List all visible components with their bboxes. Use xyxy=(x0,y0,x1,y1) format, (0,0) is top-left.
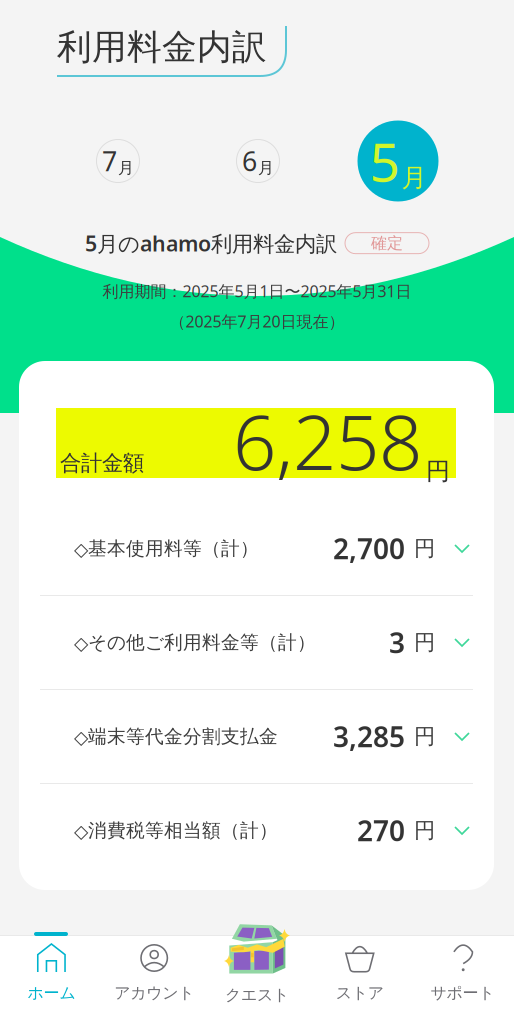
staticText: 2,700 xyxy=(333,530,405,567)
button[interactable]: ◇その他ご利用料金等（計） xyxy=(19,596,494,689)
staticText: 円 xyxy=(426,456,450,486)
staticText: 確定 xyxy=(371,233,403,253)
staticText: 月 xyxy=(258,158,274,178)
staticText: 利用料金内訳 xyxy=(57,26,267,69)
staticText: 270 xyxy=(357,812,405,849)
button[interactable]: 7 xyxy=(92,135,144,187)
button[interactable]: 6 xyxy=(232,135,284,187)
staticText: クエスト xyxy=(225,985,289,1005)
staticText: 合計金額 xyxy=(60,450,144,476)
staticText: ◇端末等代金分割支払金 xyxy=(74,725,278,748)
staticText: ホーム xyxy=(27,983,75,1003)
staticText: ◇その他ご利用料金等（計） xyxy=(74,631,316,654)
staticText: 月 xyxy=(118,158,134,178)
staticText: 3,285 xyxy=(333,718,405,755)
staticText: ◇消費税等相当額（計） xyxy=(74,819,278,842)
button[interactable]: ◇消費税等相当額（計） xyxy=(19,784,494,877)
staticText: 6 xyxy=(242,143,257,179)
staticText: サポート xyxy=(431,983,495,1003)
staticText: アカウント xyxy=(114,983,194,1003)
staticText: 7 xyxy=(102,143,117,179)
staticText: 5月のahamo利用料金内訳 xyxy=(85,229,337,257)
staticText: 月 xyxy=(401,162,426,193)
staticText: 利用期間：2025年5月1日〜2025年5月31日 xyxy=(102,280,411,301)
button[interactable]: ストア xyxy=(308,930,411,1024)
staticText: 円 xyxy=(414,817,435,844)
staticText: 円 xyxy=(414,535,435,562)
staticText: 3 xyxy=(389,624,405,661)
button[interactable]: ◇基本使用料等（計） xyxy=(19,502,494,595)
button[interactable]: ホーム xyxy=(0,930,103,1024)
staticText: ◇基本使用料等（計） xyxy=(74,537,259,560)
staticText: （2025年7月20日現在） xyxy=(169,311,344,332)
staticText: 円 xyxy=(414,629,435,656)
button[interactable]: ◇端末等代金分割支払金 xyxy=(19,690,494,783)
staticText: ストア xyxy=(336,983,384,1003)
staticText: 6,258 xyxy=(233,390,422,491)
button[interactable]: サポート xyxy=(411,930,514,1024)
button[interactable]: クエスト xyxy=(206,936,308,1024)
staticText: 円 xyxy=(414,723,435,750)
button[interactable]: 5 xyxy=(352,115,444,207)
staticText: 5 xyxy=(369,126,400,196)
button[interactable]: アカウント xyxy=(103,930,206,1024)
